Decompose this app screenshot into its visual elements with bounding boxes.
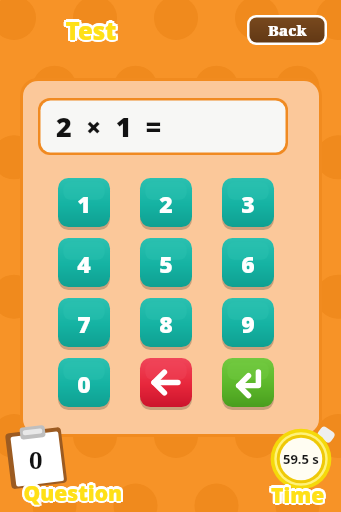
staticText: 2 × 1 = [56,108,162,145]
button[interactable]: 2 [140,178,192,230]
staticText: 7 [77,308,91,339]
button[interactable]: 6 [222,238,274,290]
staticText: Back [268,20,307,40]
staticText: 8 [159,308,173,339]
staticText: 9 [241,308,255,339]
button[interactable]: 9 [222,298,274,350]
staticText: 3 [241,188,255,219]
button[interactable]: Back [247,15,327,45]
staticText: 1 [77,188,91,219]
button[interactable]: 4 [58,238,110,290]
staticText: 2 [159,188,173,219]
button[interactable]: 5 [140,238,192,290]
button[interactable]: 0 [58,358,110,410]
button[interactable]: 0 [2,426,72,488]
staticText: 5 [159,248,173,279]
staticText: 4 [77,248,91,279]
staticText: 59.5 s [283,450,319,468]
staticText: 6 [241,248,255,279]
button[interactable]: 1 [58,178,110,230]
button[interactable]: 59.5 s [268,424,334,486]
staticText: 0 [77,368,91,399]
staticText: 0 [29,443,43,476]
button[interactable]: 7 [58,298,110,350]
button[interactable]: 3 [222,178,274,230]
button[interactable]: 8 [140,298,192,350]
button[interactable]: Backspace [140,358,192,410]
button[interactable]: Enter [222,358,274,410]
